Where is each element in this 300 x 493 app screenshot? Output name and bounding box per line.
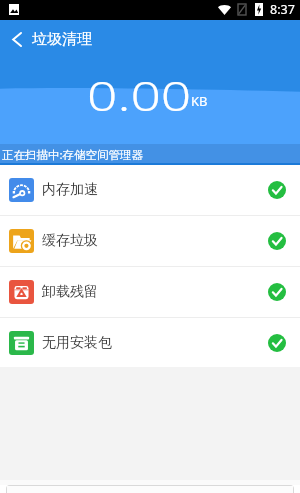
staticText: KB xyxy=(191,92,208,110)
button[interactable]: Back xyxy=(0,20,34,58)
staticText: 缓存垃圾 xyxy=(42,232,98,250)
staticText: 0.00 xyxy=(87,67,192,123)
button[interactable]: 无用安装包 xyxy=(0,318,300,367)
button[interactable]: 内存加速 xyxy=(0,165,300,215)
staticText: 内存加速 xyxy=(42,181,98,199)
staticText: 8:37 xyxy=(270,1,295,18)
button[interactable]: 缓存垃圾 xyxy=(0,216,300,266)
staticText: 无用安装包 xyxy=(42,334,112,352)
button[interactable]: 卸载残留 xyxy=(0,267,300,317)
staticText: 垃圾清理 xyxy=(32,30,92,49)
staticText: 卸载残留 xyxy=(42,283,98,301)
staticText: 正在扫描中:存储空间管理器 xyxy=(2,147,144,163)
